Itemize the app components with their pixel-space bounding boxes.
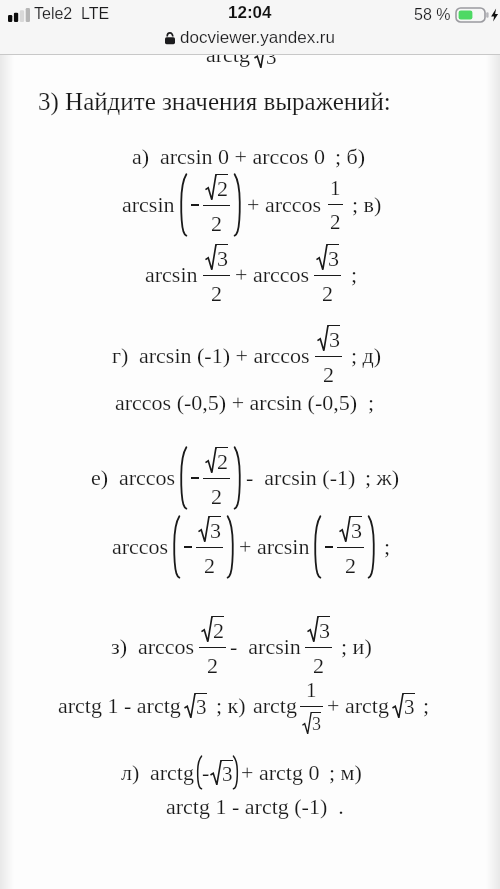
staticText: 12:04 (228, 3, 272, 22)
staticText: 2 (322, 281, 333, 305)
staticText: 3 (329, 327, 340, 351)
staticText: 2 (345, 553, 356, 577)
staticText: arcsin (-1) + arccos (139, 343, 310, 367)
staticText: ; б) (335, 144, 366, 168)
staticText: 3 (351, 518, 362, 542)
staticText: arcsin (122, 192, 175, 216)
staticText: ; м) (329, 760, 362, 784)
staticText: arccos (112, 534, 169, 558)
staticText: ; (423, 693, 430, 717)
staticText: 3 (210, 518, 221, 542)
staticText: ; (384, 534, 391, 558)
staticText: 3 (222, 762, 233, 785)
staticText: arcsin (145, 262, 198, 286)
staticText: ; ж) (365, 465, 400, 489)
staticText: 2 (207, 653, 218, 677)
staticText: + arctg (327, 693, 389, 717)
staticText: ; и) (341, 634, 372, 658)
staticText: 2 (330, 210, 341, 233)
staticText: 2 (211, 484, 222, 508)
staticText: 2 (217, 449, 228, 473)
staticText: 2 (323, 362, 334, 386)
staticText: Tele2 (34, 5, 73, 23)
staticText: 1 (330, 176, 341, 199)
staticText: 2 (313, 653, 324, 677)
staticText: LTE (81, 5, 110, 23)
staticText: ; к) (216, 693, 246, 717)
staticText: 2 (213, 618, 224, 642)
staticText: ; в) (352, 192, 382, 216)
staticText: з) (111, 634, 128, 658)
staticText: 3 (266, 55, 277, 68)
other: Battery 58 percent, charging (456, 8, 493, 22)
staticText: arctg (253, 693, 297, 717)
staticText: 2 (217, 176, 228, 200)
staticText: 2 (211, 281, 222, 305)
staticText: 2 (211, 211, 222, 235)
staticText: arctg (206, 55, 250, 66)
staticText: - (202, 760, 210, 784)
staticText: + arccos (247, 192, 322, 216)
staticText: 2 (204, 553, 215, 577)
staticText: arccos (138, 634, 195, 658)
staticText: 1 (306, 678, 317, 701)
staticText: - arcsin (-1) (246, 465, 356, 489)
staticText: + arctg 0 (241, 760, 320, 784)
staticText: arctg 1 - arctg (-1) . (166, 794, 344, 818)
staticText: 3 (328, 246, 339, 270)
staticText: 3 (319, 618, 330, 642)
staticText: 3) Найдите значения выражений: (38, 88, 391, 116)
staticText: docviewer.yandex.ru (180, 28, 335, 47)
staticText: arctg 1 - arctg (58, 693, 181, 717)
staticText: е) (91, 465, 109, 489)
other: Cellular signal (8, 8, 30, 22)
staticText: arccos (-0,5) + arcsin (-0,5) ; (115, 390, 375, 414)
staticText: г) (112, 343, 129, 367)
staticText: arccos (119, 465, 176, 489)
staticText: 3 (217, 246, 228, 270)
staticText: ; (351, 262, 358, 286)
staticText: - arcsin (230, 634, 301, 658)
staticText: л) (121, 760, 140, 784)
staticText: arctg (150, 760, 194, 784)
staticText: ; д) (351, 343, 382, 367)
staticText: а) (132, 144, 150, 168)
staticText: arcsin 0 + arccos 0 (160, 144, 326, 168)
staticText: + arcsin (239, 534, 310, 558)
staticText: + arccos (235, 262, 310, 286)
staticText: 3 (196, 695, 207, 718)
staticText: 58 % (414, 6, 451, 24)
staticText: 3 (312, 714, 321, 734)
staticText: 3 (404, 695, 415, 718)
